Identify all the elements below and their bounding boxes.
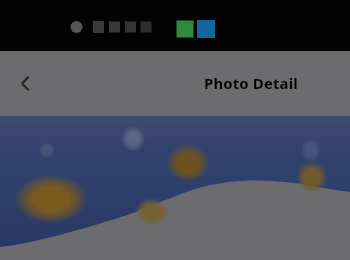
staticText: Photo Detail [204,73,298,93]
button[interactable]: Back [5,63,45,103]
